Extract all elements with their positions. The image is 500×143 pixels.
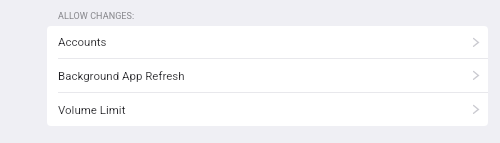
other: Open Volume Limit	[470, 104, 482, 116]
button[interactable]: Volume Limit	[47, 93, 488, 126]
staticText: Accounts	[58, 35, 107, 48]
staticText: Background App Refresh	[58, 69, 185, 82]
other: Open Background App Refresh	[470, 70, 482, 82]
staticText: ALLOW CHANGES:	[58, 11, 135, 22]
button[interactable]: Accounts	[47, 26, 488, 59]
button[interactable]: Background App Refresh	[47, 59, 488, 93]
staticText: Volume Limit	[58, 103, 126, 116]
other: Open Accounts	[470, 37, 482, 49]
